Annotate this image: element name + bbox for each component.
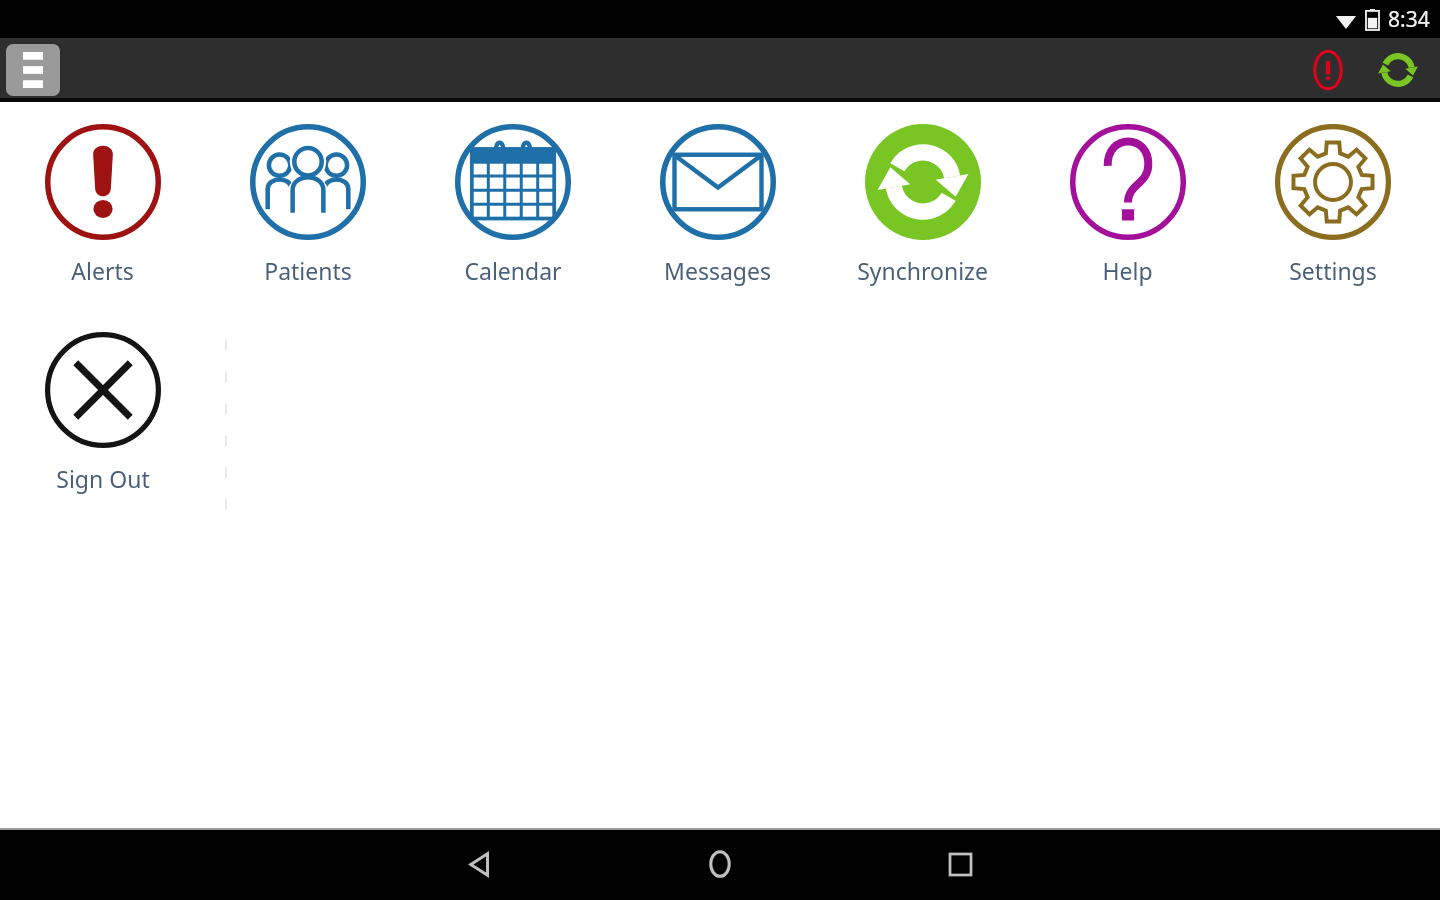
staticText: Synchronize — [857, 255, 988, 286]
button[interactable]: Alerts — [1302, 44, 1354, 96]
staticText: 8:34 — [1388, 5, 1430, 34]
button[interactable]: Menu — [6, 44, 60, 96]
staticText: Help — [1102, 255, 1153, 286]
button[interactable]: Calendar — [410, 124, 615, 286]
button[interactable]: Back — [444, 828, 516, 900]
button[interactable]: Synchronize — [1372, 44, 1424, 96]
button[interactable]: Recent apps — [924, 828, 996, 900]
button[interactable]: Sign Out — [0, 332, 205, 494]
button[interactable]: Synchronize — [820, 124, 1025, 286]
button[interactable]: Alerts — [0, 124, 205, 286]
staticText: Patients — [264, 255, 352, 286]
staticText: Alerts — [71, 255, 134, 286]
button[interactable]: Messages — [615, 124, 820, 286]
staticText: Calendar — [464, 255, 562, 286]
button[interactable]: Help — [1025, 124, 1230, 286]
staticText: Messages — [664, 255, 771, 286]
button[interactable]: Home — [684, 828, 756, 900]
staticText: Settings — [1289, 255, 1377, 286]
staticText: Sign Out — [56, 463, 150, 494]
button[interactable]: Settings — [1230, 124, 1435, 286]
button[interactable]: Patients — [205, 124, 410, 286]
